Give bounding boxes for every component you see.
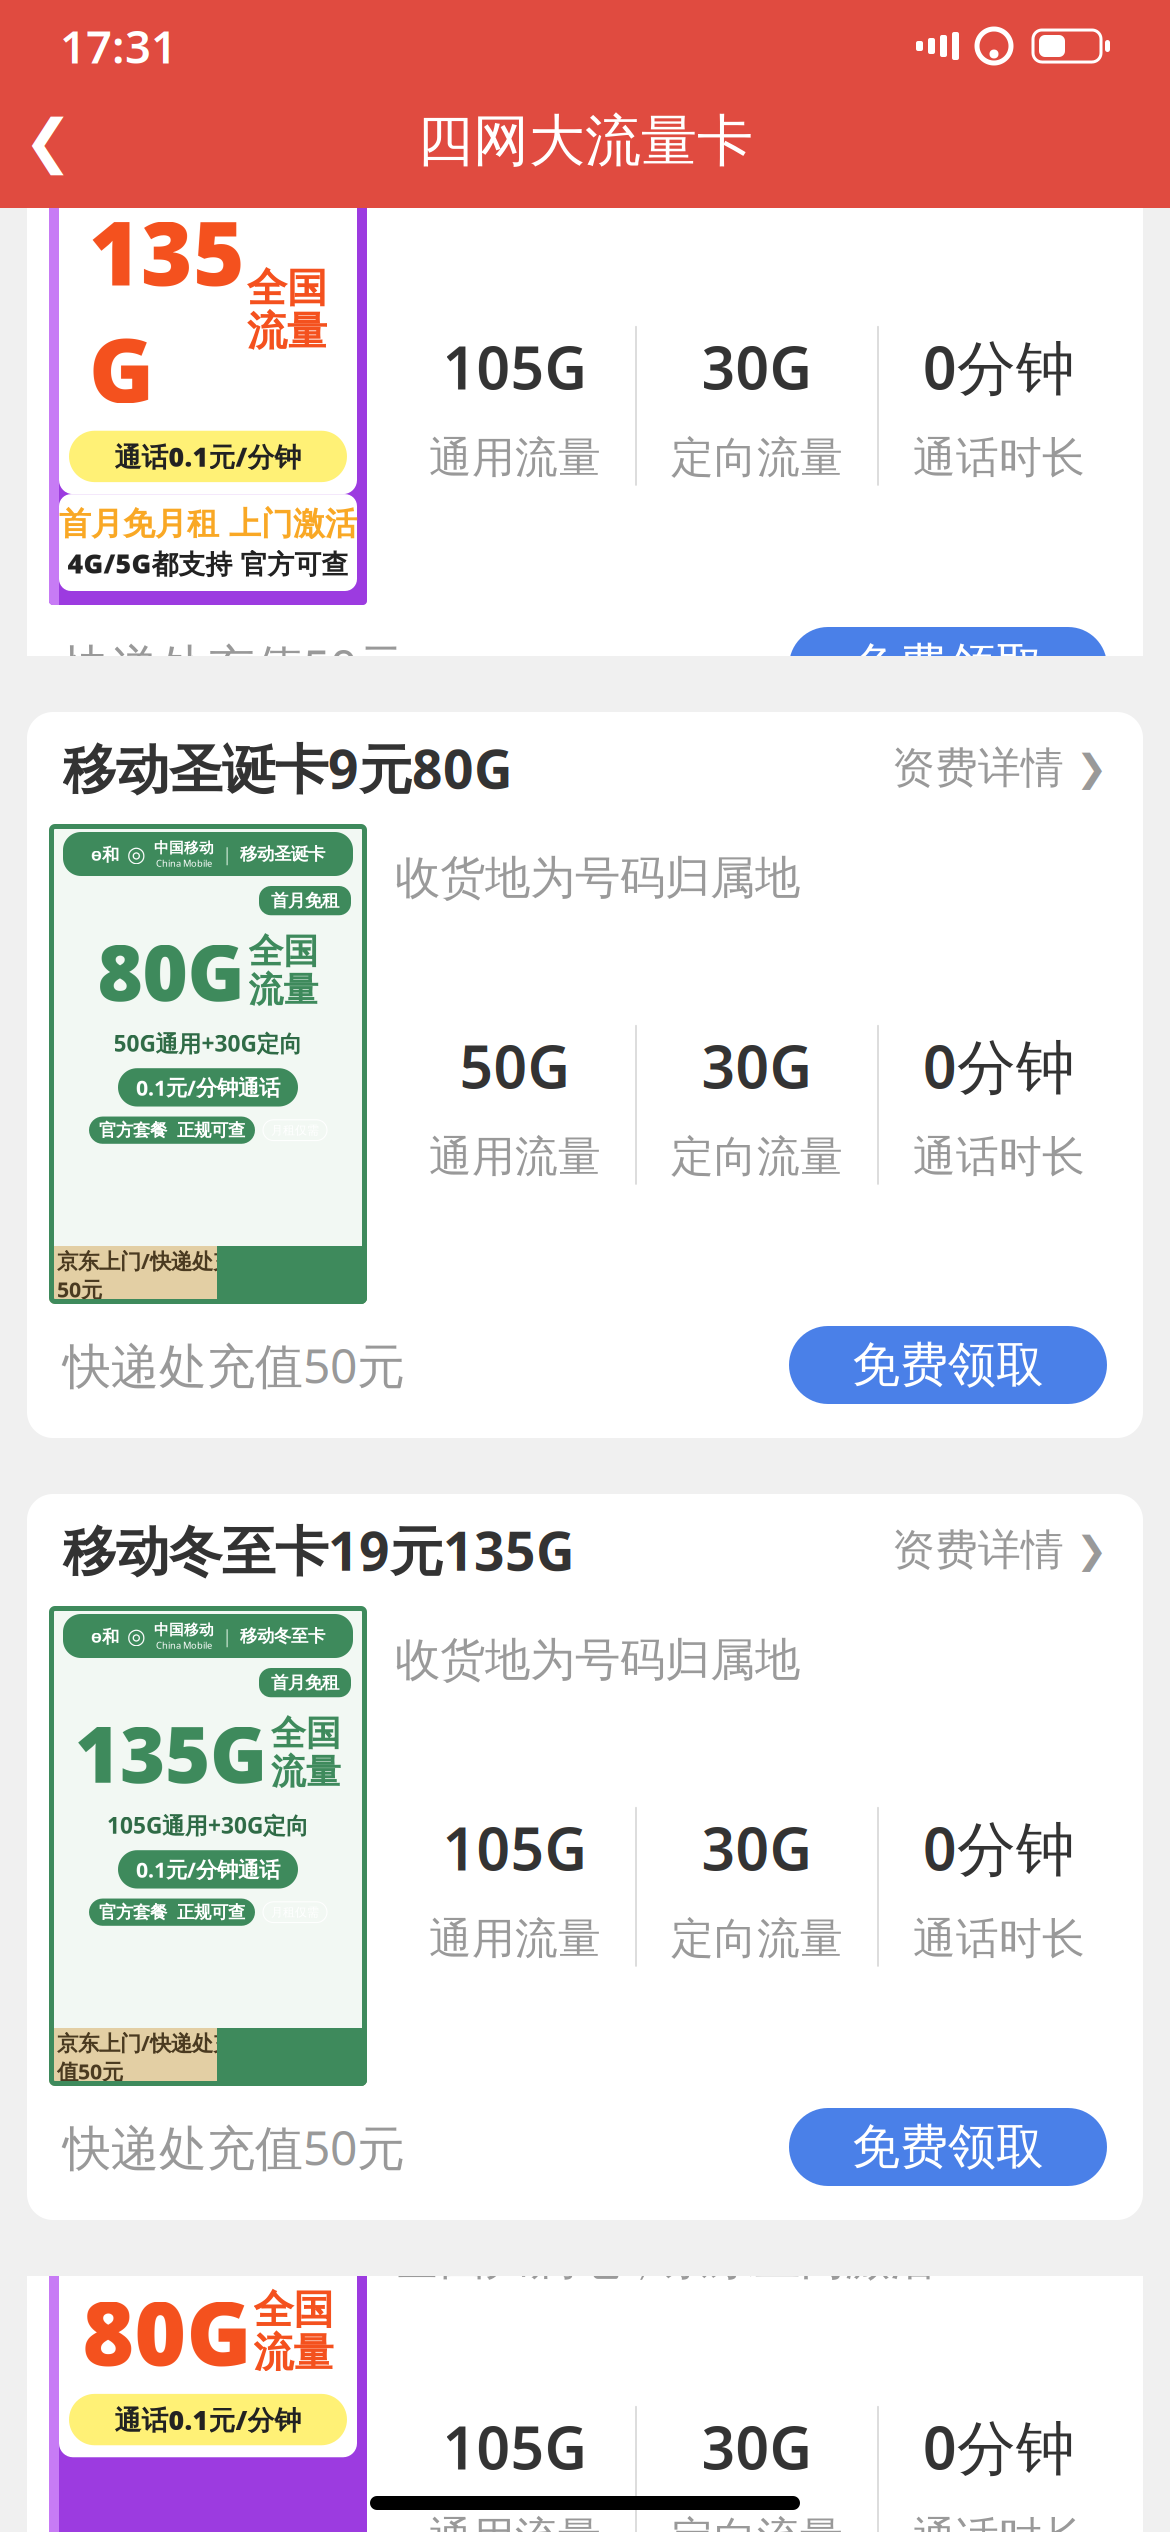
staticText: 105G	[442, 1809, 587, 1887]
staticText: 移动−xin新为卡19元80G+通话…	[63, 2114, 840, 2184]
staticText: 0分钟	[923, 2408, 1075, 2486]
staticText: 免费领取	[852, 2117, 1044, 2176]
staticText: 全国	[271, 1712, 341, 1755]
staticText: 中国移动	[154, 839, 214, 857]
button[interactable]: Back	[0, 93, 96, 189]
button[interactable]: 移动圣诞卡9元80G	[27, 712, 1143, 824]
staticText: 流量	[253, 2328, 333, 2377]
staticText: 通话时长	[913, 2512, 1085, 2532]
staticText: 定向流量	[671, 1131, 843, 1183]
staticText: 京东上门/快递处充值50元	[57, 2029, 234, 2085]
staticText: 流量	[247, 307, 327, 356]
staticText: ◎	[127, 1624, 146, 1648]
staticText: 官方套餐 正规可查	[99, 1901, 245, 1923]
staticText: 全国	[247, 264, 327, 313]
staticText: 中国移动	[88, 2198, 139, 2241]
staticText: 通话时长	[913, 432, 1085, 484]
staticText: 通话0.1元/分钟	[114, 439, 301, 474]
staticText: 30G	[701, 1809, 812, 1887]
staticText: 官方套餐 正规可查	[99, 1119, 245, 1141]
staticText: 移动冬至卡19元135G	[63, 1515, 575, 1585]
button[interactable]: 移动−xin新为卡19元80G+通话…	[27, 2093, 1143, 2205]
staticText: 19	[256, 2022, 318, 2092]
staticText: 快递处充值50元	[63, 1333, 405, 1397]
staticText: 资费详情	[892, 1524, 1064, 1576]
staticText: 80G	[82, 2273, 251, 2390]
staticText: 0分钟	[923, 1027, 1075, 1105]
staticText: 首月免租	[271, 1672, 339, 1693]
staticText: ❮	[23, 108, 72, 174]
staticText: 0.1元/分钟通话	[136, 1855, 280, 1883]
staticText: 快递处充值50元	[63, 2115, 405, 2179]
staticText: 全国	[248, 930, 318, 973]
staticText: 135G	[75, 1701, 267, 1804]
staticText: 流量	[248, 969, 318, 1011]
staticText: 4G/5G都支持 官方可查	[67, 545, 348, 581]
staticText: |	[222, 1624, 232, 1648]
staticText: 免费领取	[852, 1335, 1044, 1394]
staticText: 通用流量	[429, 1913, 601, 1965]
staticText: 免费领取	[852, 636, 1044, 695]
staticText: 首月免租	[271, 890, 339, 911]
staticText: 快递处充值50元	[63, 634, 405, 698]
staticText: 9	[287, 1240, 318, 1310]
staticText: 全国	[253, 2285, 333, 2334]
staticText: 中国移动	[154, 1621, 214, 1639]
staticText: ❯	[1064, 747, 1107, 789]
staticText: 0分钟	[923, 328, 1075, 406]
staticText: ◎	[127, 842, 146, 866]
staticText: 30G	[701, 2408, 812, 2486]
staticText: 资费详情	[892, 742, 1064, 794]
staticText: 全国归属地，京东上门激活	[395, 2231, 935, 2287]
button[interactable]: 免费领取	[789, 2108, 1107, 2186]
staticText: 资费详情	[892, 2123, 1064, 2175]
staticText: 通话0.1元/分钟	[114, 2402, 301, 2437]
staticText: 17:31	[60, 16, 177, 76]
button[interactable]: 免费领取	[789, 627, 1107, 705]
staticText: |	[222, 842, 232, 866]
staticText: 30G	[701, 1027, 812, 1105]
staticText: 四网大流量卡	[417, 107, 753, 175]
staticText: 定向流量	[671, 2512, 843, 2532]
staticText: ❯	[1064, 1529, 1107, 1571]
staticText: 收货地为号码归属地	[395, 850, 800, 906]
staticText: 通话时长	[913, 1131, 1085, 1183]
staticText: 通用流量	[429, 432, 601, 484]
staticText: China Mobile	[156, 857, 212, 869]
staticText: 流量	[271, 1751, 341, 1793]
button[interactable]: 移动冬至卡19元135G	[27, 1494, 1143, 1606]
staticText: 105G	[442, 2408, 587, 2486]
staticText: 收货地为号码归属地	[395, 1632, 800, 1688]
staticText: ◎	[59, 2218, 82, 2248]
staticText: 135G	[89, 193, 245, 427]
staticText: 0.1元/分钟通话	[136, 1073, 280, 1101]
staticText: 首月免月租 上门激活	[59, 504, 357, 543]
staticText: 19	[241, 2198, 303, 2268]
staticText: 全国归属地，京东上门激活	[395, 151, 935, 207]
button[interactable]: 免费领取	[789, 1326, 1107, 1404]
staticText: 80G	[97, 919, 244, 1022]
staticText: ꮎ和	[91, 1624, 119, 1647]
staticText: 105G通用+30G定向	[107, 1810, 309, 1840]
staticText: 月租仅需	[271, 1905, 319, 1919]
staticText: 通用流量	[429, 1131, 601, 1183]
staticText: 移动圣诞卡9元80G	[63, 733, 513, 803]
staticText: ❯	[1064, 2128, 1107, 2170]
staticText: ꮎ和	[91, 842, 119, 865]
staticText: 50G	[459, 1027, 570, 1105]
staticText: China Mobile	[156, 1639, 212, 1651]
staticText: 移动圣诞卡	[240, 843, 325, 865]
staticText: 105G	[442, 328, 587, 406]
staticText: 30G	[701, 328, 812, 406]
